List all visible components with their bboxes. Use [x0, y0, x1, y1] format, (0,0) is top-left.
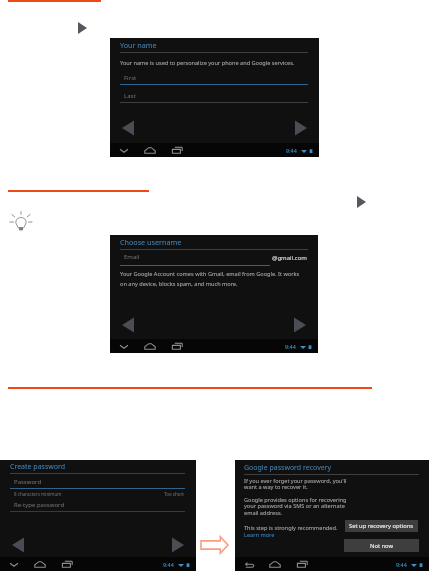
staticText: This step is strongly recommended. — [244, 524, 338, 532]
staticText: Choose username — [120, 237, 182, 247]
staticText: Your Google Account comes with Gmail, em… — [120, 270, 300, 287]
button[interactable]: Your name — [110, 38, 319, 157]
staticText: 9:44 — [286, 147, 297, 154]
staticText: Email — [124, 253, 140, 261]
staticText: Not now — [370, 542, 394, 550]
staticText: Too short — [164, 491, 184, 497]
staticText: Google provides options for recovering y… — [244, 496, 347, 517]
other: leads to — [200, 536, 229, 554]
button[interactable]: Create password — [0, 460, 196, 571]
staticText: 9:44 — [396, 561, 407, 568]
staticText: Your name — [120, 40, 157, 50]
staticText: Re-type password — [14, 501, 65, 509]
button[interactable]: Google password recovery — [235, 460, 429, 571]
button[interactable]: Play video — [78, 22, 87, 34]
button[interactable]: Not now — [344, 539, 419, 552]
staticText: Password — [14, 478, 42, 486]
staticText: Last — [124, 92, 136, 100]
staticText: @gmail.com — [272, 254, 307, 262]
staticText: Learn more — [244, 531, 275, 539]
staticText: Your name is used to personalize your ph… — [120, 59, 295, 67]
staticText: Set up recovery options — [349, 522, 414, 530]
button[interactable]: Play video — [357, 196, 366, 208]
button[interactable]: Choose username — [110, 235, 318, 353]
staticText: 9:44 — [163, 561, 174, 568]
staticText: 9:44 — [285, 343, 296, 350]
button[interactable]: Set up recovery options — [345, 520, 418, 532]
staticText: Create password — [10, 462, 66, 472]
staticText: Google password recovery — [244, 463, 332, 473]
staticText: 8 characters minimum — [14, 491, 62, 497]
staticText: First — [124, 74, 137, 82]
staticText: If you ever forget your password, you'll… — [244, 477, 347, 491]
